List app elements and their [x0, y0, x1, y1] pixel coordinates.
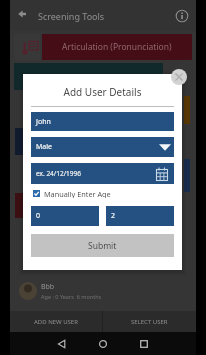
button[interactable]: Recent apps	[134, 334, 154, 354]
staticText: Male	[36, 142, 53, 152]
staticText: Screening Tools	[38, 10, 105, 22]
button[interactable]: Articulation (Pronunciation)	[42, 34, 192, 60]
button[interactable]: Submit	[31, 234, 174, 257]
staticText: Articulation (Pronunciation)	[62, 41, 172, 53]
staticText: Add User Details	[23, 85, 182, 99]
button[interactable]: Tool icon	[14, 34, 40, 60]
button[interactable]: Back	[12, 4, 32, 24]
staticText: Submit	[88, 240, 117, 252]
staticText: Manually Enter Age	[44, 189, 111, 198]
button[interactable]: John	[31, 112, 174, 131]
button[interactable]: 2	[106, 206, 174, 226]
button[interactable]: Info	[173, 7, 191, 25]
staticText: Age : 0 Years 6 months	[41, 293, 102, 300]
staticText: 0	[36, 211, 41, 221]
button[interactable]: ADD NEW USER	[10, 311, 102, 332]
button[interactable]: Close	[171, 69, 187, 85]
button[interactable]: SELECT USER	[103, 311, 196, 332]
button[interactable]: Back	[52, 334, 72, 354]
other: Pick date	[155, 167, 169, 181]
button[interactable]: Male	[31, 137, 174, 157]
staticText: ADD NEW USER	[34, 318, 78, 326]
button[interactable]: 0	[31, 206, 99, 226]
staticText: John	[36, 117, 51, 127]
button[interactable]: Manually Enter Age	[33, 189, 174, 198]
staticText: 2	[111, 211, 116, 221]
button[interactable]: Home	[93, 334, 113, 354]
button[interactable]: ex. 24/12/1996	[31, 163, 174, 184]
staticText: SELECT USER	[131, 318, 168, 326]
staticText: ex. 24/12/1996	[36, 169, 81, 178]
staticText: Bbb	[41, 282, 55, 292]
